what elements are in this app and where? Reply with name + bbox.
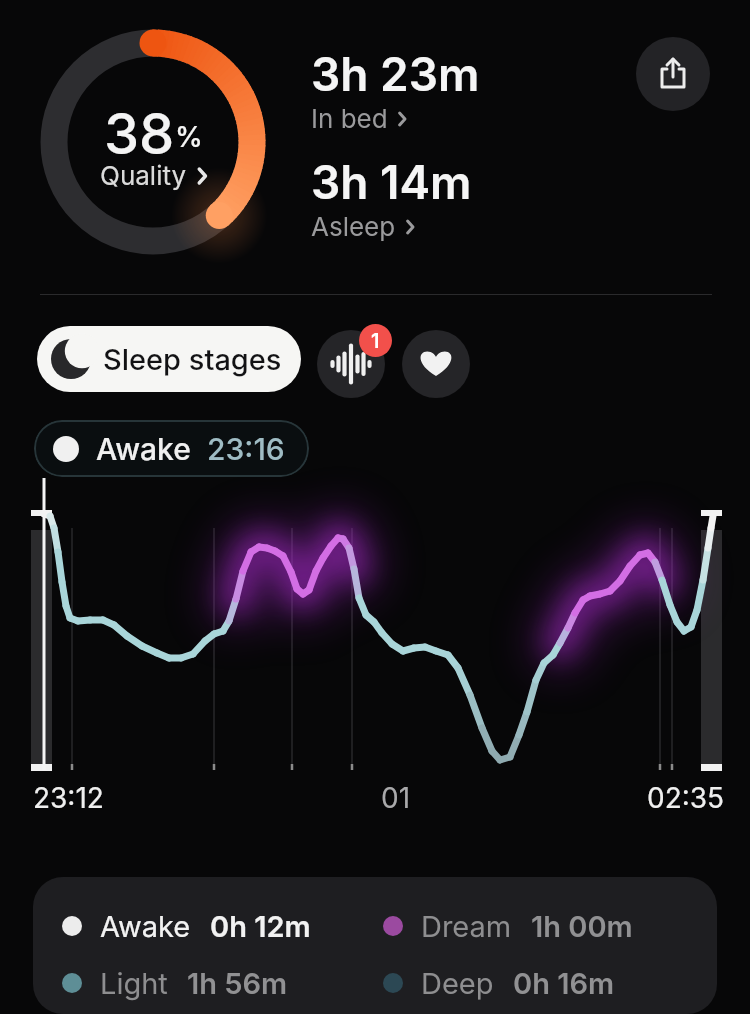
staticText: 23:16 [207,431,285,467]
button[interactable]: Deep [383,962,615,1004]
staticText: 23:12 [33,781,104,815]
staticText: Awake [96,431,191,467]
button[interactable] [317,330,385,398]
staticText: 0h 16m [513,966,615,1001]
staticText: In bed [311,103,388,134]
staticText: % [175,120,203,154]
staticText: Sleep stages [103,342,282,377]
staticText: Deep [421,966,494,1001]
staticText: Quality [100,160,187,191]
staticText: 1h 56m [187,966,288,1001]
staticText: 02:35 [647,781,725,815]
staticText: 3h 23m [311,46,480,102]
button[interactable]: In bed [311,103,408,134]
button[interactable]: Awake [62,905,311,947]
staticText: 0h 12m [210,909,311,944]
staticText: Dream [421,909,512,944]
staticText: 01 [381,781,411,815]
button[interactable] [636,37,710,111]
staticText: 1 [371,329,380,353]
button[interactable]: 38 [53,100,253,160]
button[interactable]: Asleep [311,211,416,242]
staticText: Asleep [311,211,396,242]
button[interactable]: Sleep stages [37,326,301,392]
button[interactable] [402,330,470,398]
button[interactable]: Awake [34,420,309,477]
staticText: Awake [100,909,191,944]
staticText: Light [100,966,168,1001]
button[interactable]: Light [62,962,288,1004]
staticText: 38 [104,100,175,160]
button[interactable]: Dream [383,905,633,947]
button[interactable]: Quality [100,160,209,191]
staticText: 3h 14m [311,154,472,210]
staticText: 1h 00m [531,909,633,944]
